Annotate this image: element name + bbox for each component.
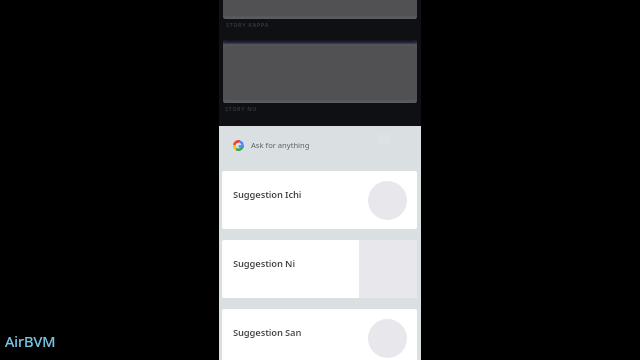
- button[interactable]: [223, 40, 417, 103]
- button[interactable]: [223, 0, 417, 19]
- staticText: STORY KAPPA: [226, 21, 269, 29]
- button[interactable]: Ask for anything: [219, 126, 421, 171]
- staticText: Suggestion San: [233, 326, 302, 339]
- button[interactable]: STORY NU: [225, 105, 258, 113]
- button[interactable]: Suggestion San: [222, 309, 417, 360]
- staticText: Suggestion Ichi: [233, 188, 302, 201]
- button[interactable]: Suggestion Ni: [222, 240, 417, 298]
- staticText: Ask for anything: [251, 140, 310, 150]
- staticText: AirBVM: [5, 331, 56, 351]
- staticText: Suggestion Ni: [233, 257, 295, 270]
- button[interactable]: Suggestion Ichi: [222, 171, 417, 229]
- button[interactable]: STORY KAPPA: [226, 21, 269, 29]
- staticText: STORY NU: [225, 105, 258, 113]
